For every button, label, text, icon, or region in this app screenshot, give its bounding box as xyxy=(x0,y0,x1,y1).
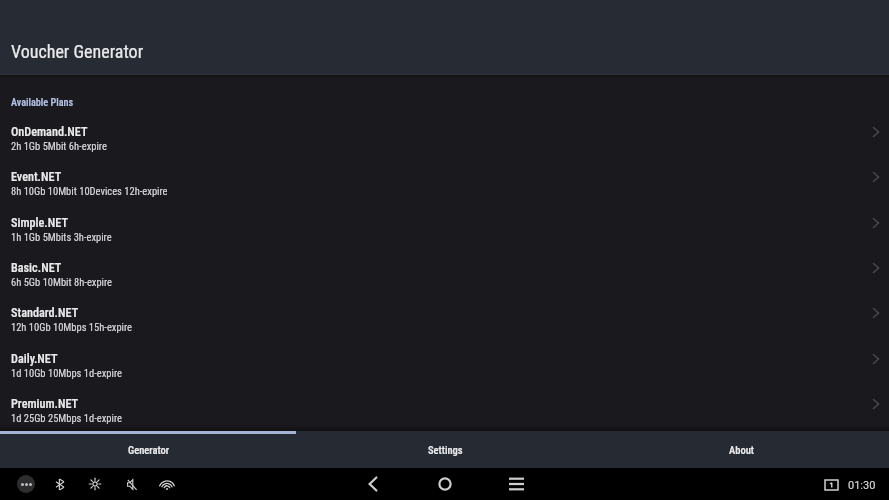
button[interactable]: Basic.NET xyxy=(0,254,889,299)
staticText: Daily.NET xyxy=(11,352,58,366)
button[interactable]: Daily.NET xyxy=(0,345,889,390)
button[interactable]: Brightness xyxy=(85,474,105,494)
button[interactable]: Premium.NET xyxy=(0,390,889,435)
button[interactable]: Mute xyxy=(122,474,142,494)
button[interactable]: About xyxy=(593,431,889,468)
button[interactable]: Back xyxy=(361,472,385,496)
button[interactable]: Bluetooth xyxy=(50,474,70,494)
button[interactable]: Simple.NET xyxy=(0,209,889,254)
button[interactable]: More options xyxy=(17,475,35,493)
staticText: 2h 1Gb 5Mbit 6h-expire xyxy=(11,140,107,152)
button[interactable]: Recent apps xyxy=(504,472,528,496)
staticText: Standard.NET xyxy=(11,306,79,320)
button[interactable]: Home xyxy=(433,472,457,496)
button[interactable]: OnDemand.NET xyxy=(0,118,889,163)
staticText: 8h 10Gb 10Mbit 10Devices 12h-expire xyxy=(11,185,168,197)
staticText: Simple.NET xyxy=(11,216,68,230)
staticText: About xyxy=(729,444,754,456)
staticText: Voucher Generator xyxy=(11,41,144,62)
staticText: Premium.NET xyxy=(11,397,79,411)
staticText: Event.NET xyxy=(11,170,62,184)
staticText: OnDemand.NET xyxy=(11,125,88,139)
staticText: 01:30 xyxy=(848,479,876,492)
staticText: 1d 25Gb 25Mbps 1d-expire xyxy=(11,412,122,424)
staticText: 1h 1Gb 5Mbits 3h-expire xyxy=(11,231,112,243)
button[interactable]: Wi-Fi xyxy=(157,474,177,494)
staticText: Settings xyxy=(428,444,463,456)
staticText: Generator xyxy=(128,444,170,456)
staticText: 6h 5Gb 10Mbit 8h-expire xyxy=(11,276,113,288)
button[interactable]: Generator xyxy=(0,431,297,468)
staticText: 12h 10Gb 10Mbps 15h-expire xyxy=(11,321,133,333)
staticText: 1d 10Gb 10Mbps 1d-expire xyxy=(11,367,122,379)
button[interactable]: Event.NET xyxy=(0,163,889,208)
button[interactable]: Standard.NET xyxy=(0,299,889,344)
staticText: Basic.NET xyxy=(11,261,62,275)
button[interactable]: Settings xyxy=(297,431,593,468)
staticText: Available Plans xyxy=(11,97,74,109)
